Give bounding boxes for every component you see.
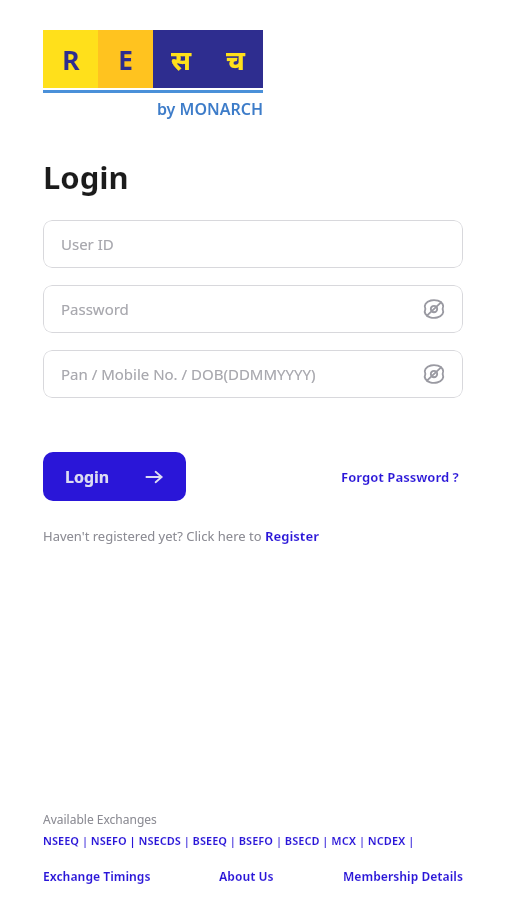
staticText: E [118,41,134,78]
button[interactable]: Membership Details [343,868,463,884]
staticText: by MONARCH [43,98,263,120]
button[interactable]: Password [43,285,463,333]
button[interactable]: Pan / Mobile No. / DOB(DDMMYYYY) [43,350,463,398]
staticText: NSEEQ | NSEFO | NSECDS | BSEEQ | BSEFO |… [43,833,415,848]
button[interactable]: Toggle password visibility [421,361,447,387]
button[interactable]: Toggle password visibility [421,296,447,322]
staticText: User ID [61,234,114,254]
button[interactable]: Login [43,452,186,501]
staticText: Exchange Timings [43,868,151,884]
staticText: स [171,41,191,78]
staticText: Pan / Mobile No. / DOB(DDMMYYYY) [61,364,316,384]
staticText: Login [65,466,110,488]
button[interactable]: User ID [43,220,463,268]
staticText: Available Exchanges [43,811,157,827]
staticText: R [62,41,80,78]
staticText: Haven't registered yet? Click here to Re… [43,527,320,545]
button[interactable]: Forgot Password ? [337,464,463,490]
staticText: Membership Details [343,868,463,884]
button[interactable]: Haven't registered yet? Click here to Re… [43,527,320,545]
staticText: Forgot Password ? [341,468,459,486]
staticText: About Us [219,868,274,884]
button[interactable]: Exchange Timings [43,868,151,884]
staticText: Password [61,299,129,319]
staticText: च [226,41,245,78]
button[interactable]: About Us [219,868,274,884]
staticText: Login [43,156,129,198]
